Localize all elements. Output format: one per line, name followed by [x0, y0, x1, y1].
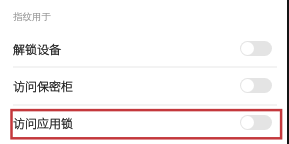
button[interactable]: 访问应用锁	[0, 104, 289, 141]
staticText: 解锁设备	[13, 40, 62, 57]
staticText: 访问保密柜	[13, 77, 74, 94]
staticText: 解锁设备	[13, 40, 62, 57]
button[interactable]: 解锁设备	[0, 30, 289, 67]
staticText: 访问应用锁	[13, 114, 74, 131]
button[interactable]: 访问应用锁	[240, 115, 272, 130]
button[interactable]: 访问保密柜	[240, 78, 272, 93]
button[interactable]: 解锁设备	[240, 41, 272, 56]
button[interactable]: 访问保密柜	[0, 67, 289, 104]
staticText: 访问保密柜	[13, 77, 74, 94]
staticText: 访问应用锁	[13, 114, 74, 131]
staticText: 指纹用于	[13, 11, 51, 23]
